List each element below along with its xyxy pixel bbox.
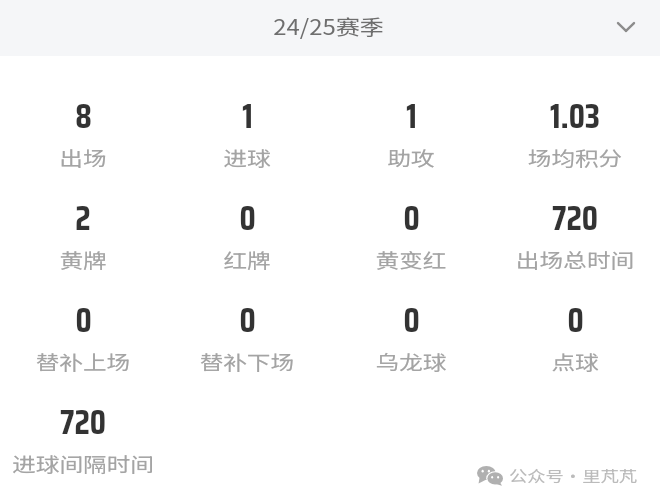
staticText: 0: [75, 293, 92, 347]
button[interactable]: 0: [1, 293, 165, 395]
button[interactable]: Choose season: [609, 10, 643, 44]
staticText: 出场: [59, 143, 107, 172]
button[interactable]: 720: [1, 395, 165, 497]
staticText: 0: [403, 293, 420, 347]
staticText: 红牌: [223, 245, 271, 274]
staticText: 1: [242, 89, 253, 143]
staticText: 黄变红: [376, 245, 446, 274]
button[interactable]: 0: [493, 293, 657, 395]
button[interactable]: 1.03: [493, 89, 657, 191]
button[interactable]: 0: [165, 191, 329, 293]
staticText: 进球间隔时间: [12, 449, 154, 478]
staticText: 黄牌: [59, 245, 107, 274]
button[interactable]: 8: [1, 89, 165, 191]
button[interactable]: 0: [329, 293, 493, 395]
staticText: 进球: [223, 143, 271, 172]
staticText: 24/25赛季: [273, 11, 384, 41]
staticText: 8: [75, 89, 92, 143]
staticText: 2: [75, 191, 91, 245]
button[interactable]: 1: [329, 89, 493, 191]
button[interactable]: 1: [165, 89, 329, 191]
button[interactable]: 2: [1, 191, 165, 293]
staticText: 1.03: [550, 89, 600, 143]
staticText: 点球: [551, 347, 599, 376]
staticText: 0: [567, 293, 584, 347]
staticText: 乌龙球: [376, 347, 446, 376]
button[interactable]: 24/25赛季: [0, 0, 660, 56]
staticText: 720: [60, 395, 106, 449]
staticText: 场均积分: [528, 143, 622, 172]
staticText: 0: [403, 191, 420, 245]
staticText: 替补下场: [200, 347, 294, 376]
staticText: 助攻: [387, 143, 435, 172]
staticText: 720: [552, 191, 598, 245]
button[interactable]: 720: [493, 191, 657, 293]
staticText: 0: [239, 293, 256, 347]
staticText: 替补上场: [36, 347, 130, 376]
staticText: 公众号·里芃芃: [509, 464, 638, 486]
button[interactable]: 0: [165, 293, 329, 395]
staticText: 出场总时间: [516, 245, 634, 274]
staticText: 1: [406, 89, 417, 143]
button[interactable]: 0: [329, 191, 493, 293]
staticText: 0: [239, 191, 256, 245]
